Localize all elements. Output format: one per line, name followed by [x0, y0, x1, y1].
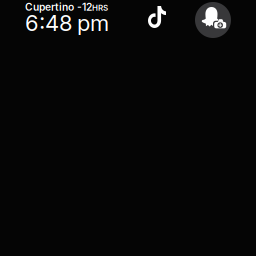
button[interactable]: Cupertino -12HRS [25, 1, 137, 36]
staticText: Cupertino -12HRS [25, 1, 108, 13]
button[interactable]: Snapchat [195, 2, 231, 38]
button[interactable]: TikTok [139, 0, 175, 36]
staticText: 6:48 pm [25, 10, 109, 36]
